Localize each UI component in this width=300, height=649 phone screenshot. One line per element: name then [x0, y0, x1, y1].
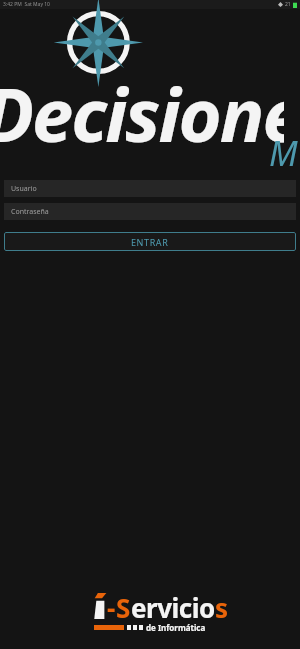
staticText: Contraseña — [11, 207, 49, 217]
staticText: Usuario — [11, 184, 37, 194]
button[interactable]: Contraseña — [4, 203, 296, 220]
staticText: de Informática — [146, 622, 206, 633]
staticText: S — [116, 590, 131, 622]
button[interactable]: ENTRAR — [4, 232, 296, 251]
staticText: s — [215, 590, 227, 622]
button[interactable]: Usuario — [4, 180, 296, 197]
staticText: 21 — [285, 1, 291, 8]
staticText: Decisiones — [0, 63, 284, 164]
staticText: ervicio — [131, 590, 215, 622]
staticText: - — [107, 590, 116, 622]
staticText: M — [269, 130, 298, 176]
staticText: 3:42 PM Sat May 10 — [3, 1, 50, 8]
staticText: ENTRAR — [131, 236, 169, 248]
